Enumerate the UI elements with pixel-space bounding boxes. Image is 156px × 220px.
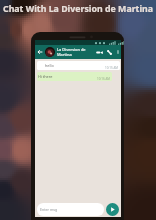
button[interactable]: Back [35,45,121,59]
staticText: Enter msg [40,207,58,212]
other: Back [37,49,43,55]
button[interactable]: Send [106,203,119,216]
other: Video call [96,49,103,56]
button[interactable]: Hi there [37,72,112,81]
button[interactable]: Enter msg [37,203,104,216]
other: More options [116,50,120,54]
staticText: La Diversion de [57,47,86,52]
staticText: hello [45,63,54,68]
staticText: 10:16 AM [97,77,111,81]
staticText: 10:15 AM [105,66,119,70]
other: Call [106,49,113,56]
staticText: Martina [57,52,72,57]
staticText: Hi there [38,74,53,79]
staticText: Chat With La Diversion de Martina [0,3,156,15]
button[interactable]: hello [37,61,120,70]
